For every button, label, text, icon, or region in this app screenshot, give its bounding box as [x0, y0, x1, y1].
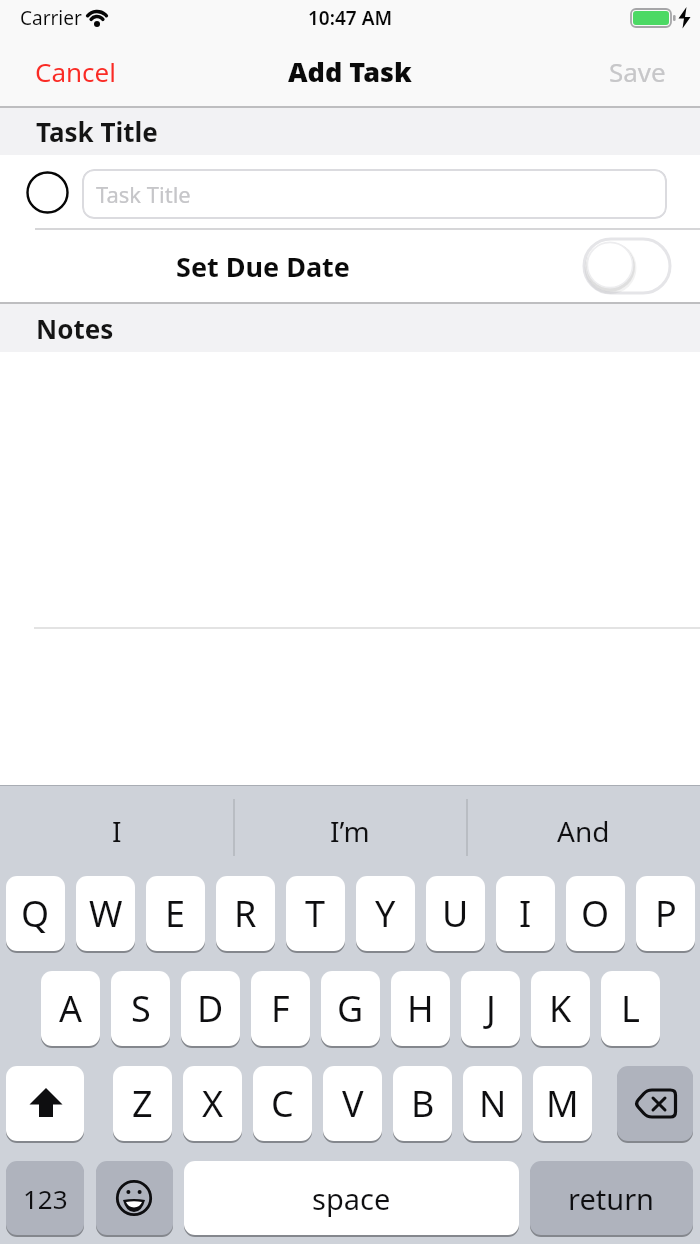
button[interactable]: Cancel: [35, 48, 145, 94]
button[interactable]: [26, 171, 69, 214]
button[interactable]: L: [601, 971, 660, 1046]
button[interactable]: Z: [113, 1066, 172, 1141]
button[interactable]: A: [41, 971, 100, 1046]
staticText: C: [271, 1079, 294, 1128]
button[interactable]: C: [253, 1066, 312, 1141]
button[interactable]: [6, 1066, 84, 1141]
staticText: N: [479, 1079, 507, 1128]
staticText: Task Title: [96, 179, 191, 209]
button[interactable]: Save: [586, 48, 666, 94]
button[interactable]: V: [323, 1066, 382, 1141]
staticText: W: [89, 889, 123, 938]
button[interactable]: X: [183, 1066, 242, 1141]
staticText: Save: [609, 54, 666, 89]
button[interactable]: R: [216, 876, 275, 951]
button[interactable]: And: [466, 806, 700, 856]
staticText: J: [486, 984, 496, 1033]
button[interactable]: I’m: [233, 806, 466, 856]
staticText: Y: [375, 889, 396, 938]
staticText: Set Due Date: [176, 248, 350, 285]
staticText: Q: [21, 889, 50, 938]
staticText: R: [234, 889, 257, 938]
button[interactable]: U: [426, 876, 485, 951]
staticText: space: [312, 1179, 391, 1218]
staticText: V: [342, 1079, 364, 1128]
button[interactable]: [582, 237, 672, 295]
button[interactable]: [96, 1161, 173, 1235]
staticText: E: [165, 889, 186, 938]
button[interactable]: T: [286, 876, 345, 951]
staticText: K: [549, 984, 572, 1033]
staticText: 10:47 AM: [308, 5, 393, 31]
button[interactable]: P: [636, 876, 695, 951]
staticText: B: [411, 1079, 435, 1128]
button[interactable]: Q: [6, 876, 65, 951]
staticText: Task Title: [36, 114, 158, 149]
staticText: F: [271, 984, 290, 1033]
button[interactable]: K: [531, 971, 590, 1046]
staticText: Notes: [36, 311, 114, 346]
button[interactable]: F: [251, 971, 310, 1046]
staticText: S: [131, 984, 151, 1033]
staticText: T: [305, 889, 326, 938]
staticText: D: [197, 984, 224, 1033]
button[interactable]: Task Title: [82, 169, 667, 219]
button[interactable]: return: [530, 1161, 693, 1235]
button[interactable]: H: [391, 971, 450, 1046]
button[interactable]: M: [533, 1066, 592, 1141]
staticText: M: [546, 1079, 579, 1128]
staticText: A: [59, 984, 83, 1033]
button[interactable]: N: [463, 1066, 522, 1141]
button[interactable]: Y: [356, 876, 415, 951]
staticText: I: [112, 812, 122, 850]
button[interactable]: B: [393, 1066, 452, 1141]
staticText: Carrier: [20, 5, 82, 31]
staticText: U: [442, 889, 469, 938]
button[interactable]: S: [111, 971, 170, 1046]
staticText: I: [519, 889, 532, 938]
staticText: return: [568, 1179, 655, 1218]
staticText: P: [655, 889, 677, 938]
staticText: Cancel: [35, 54, 116, 89]
staticText: And: [557, 812, 610, 850]
staticText: Z: [132, 1079, 153, 1128]
staticText: L: [621, 984, 640, 1033]
button[interactable]: O: [566, 876, 625, 951]
button[interactable]: W: [76, 876, 135, 951]
button[interactable]: J: [461, 971, 520, 1046]
button[interactable]: space: [184, 1161, 519, 1235]
button[interactable]: D: [181, 971, 240, 1046]
staticText: I’m: [330, 812, 370, 850]
staticText: G: [337, 984, 364, 1033]
staticText: H: [407, 984, 434, 1033]
staticText: Add Task: [288, 53, 412, 90]
button[interactable]: G: [321, 971, 380, 1046]
staticText: O: [581, 889, 610, 938]
staticText: X: [202, 1079, 224, 1128]
button[interactable]: [617, 1066, 693, 1141]
button[interactable]: 123: [6, 1161, 84, 1235]
button[interactable]: I: [496, 876, 555, 951]
staticText: 123: [23, 1181, 68, 1216]
button[interactable]: I: [0, 806, 233, 856]
button[interactable]: E: [146, 876, 205, 951]
